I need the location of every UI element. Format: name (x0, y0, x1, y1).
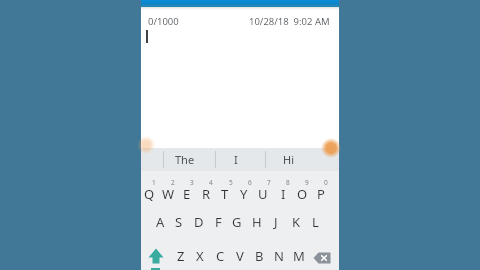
button[interactable]: K (286, 212, 306, 232)
button[interactable] (321, 138, 341, 158)
staticText: W (162, 185, 175, 203)
staticText: 10/28/18 9:02 AM (249, 15, 330, 28)
button[interactable]: S (169, 212, 189, 232)
button[interactable]: Z (171, 246, 191, 266)
button[interactable]: R (196, 184, 216, 204)
button[interactable]: M (289, 246, 309, 266)
staticText: B (255, 247, 264, 265)
button[interactable] (146, 247, 166, 267)
button[interactable]: A (150, 212, 170, 232)
staticText: K (292, 213, 301, 231)
button[interactable]: D (189, 212, 209, 232)
staticText: 3 (190, 178, 194, 187)
staticText: 0 (324, 178, 328, 187)
button[interactable]: Hi (263, 148, 313, 171)
button[interactable]: C (210, 246, 230, 266)
button[interactable]: The (161, 148, 209, 171)
staticText: 8 (286, 178, 290, 187)
button[interactable]: J (266, 212, 286, 232)
staticText: 7 (267, 178, 271, 187)
staticText: P (317, 185, 325, 203)
staticText: E (183, 185, 191, 203)
staticText: Y (240, 185, 248, 203)
staticText: J (274, 213, 278, 231)
staticText: The (175, 152, 195, 167)
button[interactable] (137, 136, 155, 154)
staticText: 4 (209, 178, 213, 187)
staticText: 5 (229, 178, 233, 187)
button[interactable]: P (311, 184, 331, 204)
button[interactable]: I (273, 184, 293, 204)
staticText: H (252, 213, 262, 231)
button[interactable]: Q (139, 184, 159, 204)
staticText: 6 (248, 178, 252, 187)
staticText: 2 (171, 178, 175, 187)
button[interactable]: L (305, 212, 325, 232)
button[interactable]: F (208, 212, 228, 232)
staticText: 1 (152, 178, 156, 187)
staticText: L (312, 213, 319, 231)
staticText: U (258, 185, 268, 203)
button[interactable]: E (177, 184, 197, 204)
staticText: N (274, 247, 284, 265)
staticText: I (234, 152, 238, 167)
button[interactable]: W (158, 184, 178, 204)
staticText: O (297, 185, 308, 203)
staticText: M (293, 247, 305, 265)
button[interactable]: U (253, 184, 273, 204)
button[interactable]: T (215, 184, 235, 204)
staticText: Hi (283, 152, 294, 167)
button[interactable]: O (292, 184, 312, 204)
button[interactable]: G (227, 212, 247, 232)
staticText: I (281, 185, 286, 203)
button[interactable]: X (190, 246, 210, 266)
button[interactable]: N (269, 246, 289, 266)
button[interactable]: B (249, 246, 269, 266)
staticText: T (221, 185, 229, 203)
staticText: S (175, 213, 183, 231)
staticText: X (196, 247, 204, 265)
staticText: V (236, 247, 244, 265)
button[interactable]: V (230, 246, 250, 266)
staticText: F (215, 213, 222, 231)
staticText: C (216, 247, 225, 265)
staticText: R (202, 185, 211, 203)
staticText: G (232, 213, 242, 231)
button[interactable]: I (213, 148, 259, 171)
staticText: D (194, 213, 204, 231)
staticText: A (156, 213, 165, 231)
button[interactable] (312, 249, 332, 267)
button[interactable]: H (247, 212, 267, 232)
button[interactable]: Y (234, 184, 254, 204)
staticText: 9 (305, 178, 309, 187)
staticText: Q (144, 185, 155, 203)
staticText: Z (177, 247, 185, 265)
staticText: 0/1000 (148, 15, 179, 28)
